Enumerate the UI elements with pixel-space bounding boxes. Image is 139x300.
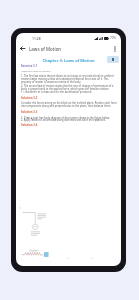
staticText: F = ma where m is mass and a is the acce…: [21, 90, 92, 93]
button[interactable]: Bookmark page: [107, 56, 119, 63]
staticText: Solution 3.3: [21, 110, 38, 114]
staticText: motion keeps moving unless an unbalanced…: [21, 77, 109, 80]
staticText: Laws of Motion: [29, 46, 62, 52]
staticText: Solution 3.2: [21, 96, 38, 100]
button[interactable]: Back: [18, 44, 27, 53]
button[interactable]: More options: [110, 44, 119, 53]
staticText: 1. The first law states that an object a…: [21, 74, 114, 77]
staticText: 2. Apply Newton's second law along both …: [21, 118, 106, 121]
staticText: body is proportional to the applied forc…: [21, 87, 109, 90]
staticText: Exercise 3.1: [21, 64, 38, 68]
staticText: property of matter is known as inertia o…: [21, 80, 82, 83]
staticText: Chapter 3: Laws of Motion: [16, 58, 121, 64]
staticText: 70%: [110, 36, 116, 40]
staticText: Solution 3.4: [21, 123, 38, 127]
staticText: 1. Draw a neat free body diagram of the …: [21, 116, 110, 119]
staticText: into components along and perpendicular …: [21, 104, 111, 107]
staticText: Consider the forces acting on the block …: [21, 101, 117, 104]
staticText: 11:28: [32, 36, 41, 41]
staticText: 2. The second law of motion states that …: [21, 84, 114, 87]
staticText: Newton's Laws of Motion: [21, 69, 51, 72]
